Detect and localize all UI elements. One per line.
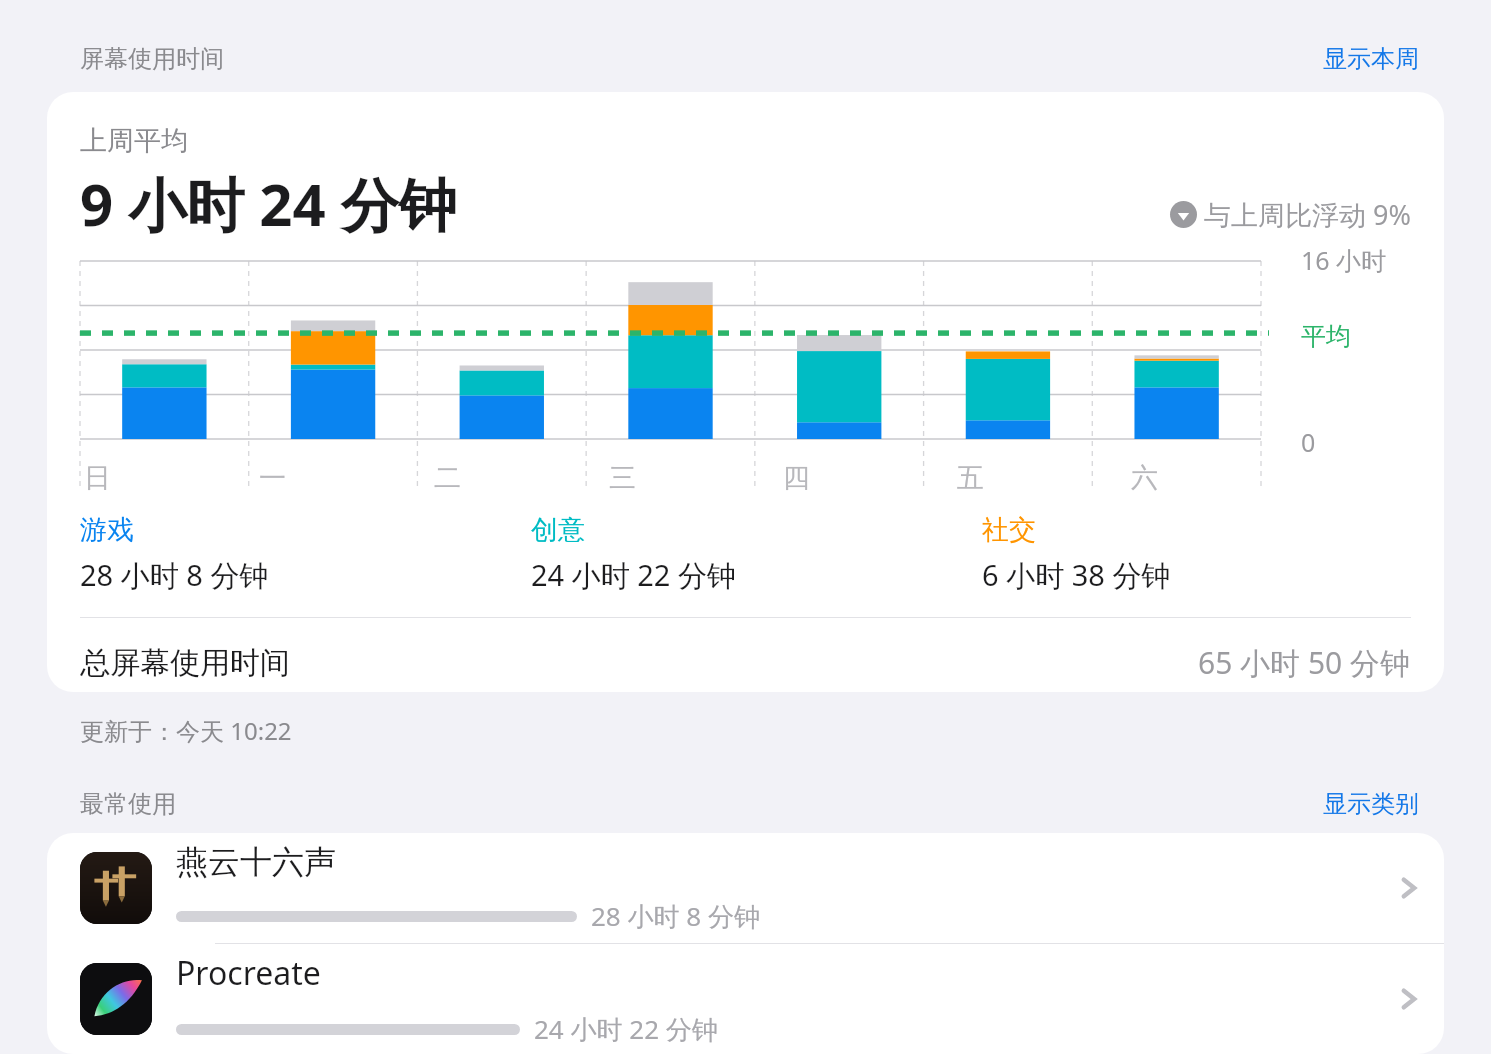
staticText: 上周平均 <box>80 124 188 158</box>
staticText: 五 <box>957 461 984 495</box>
button[interactable]: 燕云十六声 <box>47 833 1444 944</box>
other: 查看详情 <box>1374 833 1444 943</box>
staticText: 平均 <box>1301 321 1411 352</box>
staticText: 更新于：今天 10:22 <box>80 714 292 747</box>
staticText: 65 小时 50 分钟 <box>1198 642 1411 683</box>
staticText: 0 <box>1301 425 1411 459</box>
staticText: 六 <box>1131 461 1158 495</box>
staticText: 一 <box>259 461 286 495</box>
staticText: 9 小时 24 分钟 <box>80 164 457 243</box>
staticText: 6 小时 38 分钟 <box>982 555 1171 595</box>
button[interactable]: 创意 <box>531 513 982 595</box>
button[interactable]: 上周平均 <box>47 92 1444 692</box>
staticText: 28 小时 8 分钟 <box>591 898 760 934</box>
staticText: 16 小时 <box>1301 243 1411 277</box>
button[interactable]: Procreate <box>47 944 1444 1054</box>
staticText: 四 <box>783 461 810 495</box>
staticText: 24 小时 22 分钟 <box>534 1011 718 1047</box>
staticText: 游戏 <box>80 513 134 547</box>
staticText: 显示类别 <box>1323 789 1419 819</box>
staticText: 总屏幕使用时间 <box>80 644 290 682</box>
staticText: 燕云十六声 <box>176 842 336 882</box>
staticText: 创意 <box>531 513 585 547</box>
button[interactable]: 社交 <box>982 513 1411 595</box>
staticText: Procreate <box>176 951 321 995</box>
button[interactable]: 显示本周 <box>1323 44 1419 74</box>
staticText: 28 小时 8 分钟 <box>80 555 269 595</box>
button[interactable]: 游戏 <box>80 513 531 595</box>
staticText: 三 <box>609 461 636 495</box>
staticText: 社交 <box>982 513 1036 547</box>
other: 查看详情 <box>1374 944 1444 1054</box>
staticText: 二 <box>434 461 461 495</box>
staticText: 最常使用 <box>80 789 176 819</box>
staticText: 日 <box>84 461 111 495</box>
staticText: 屏幕使用时间 <box>80 44 224 74</box>
staticText: 与上周比浮动 9% <box>1204 196 1411 233</box>
button[interactable]: 显示类别 <box>1323 789 1419 819</box>
staticText: 显示本周 <box>1323 44 1419 74</box>
staticText: 24 小时 22 分钟 <box>531 555 736 595</box>
